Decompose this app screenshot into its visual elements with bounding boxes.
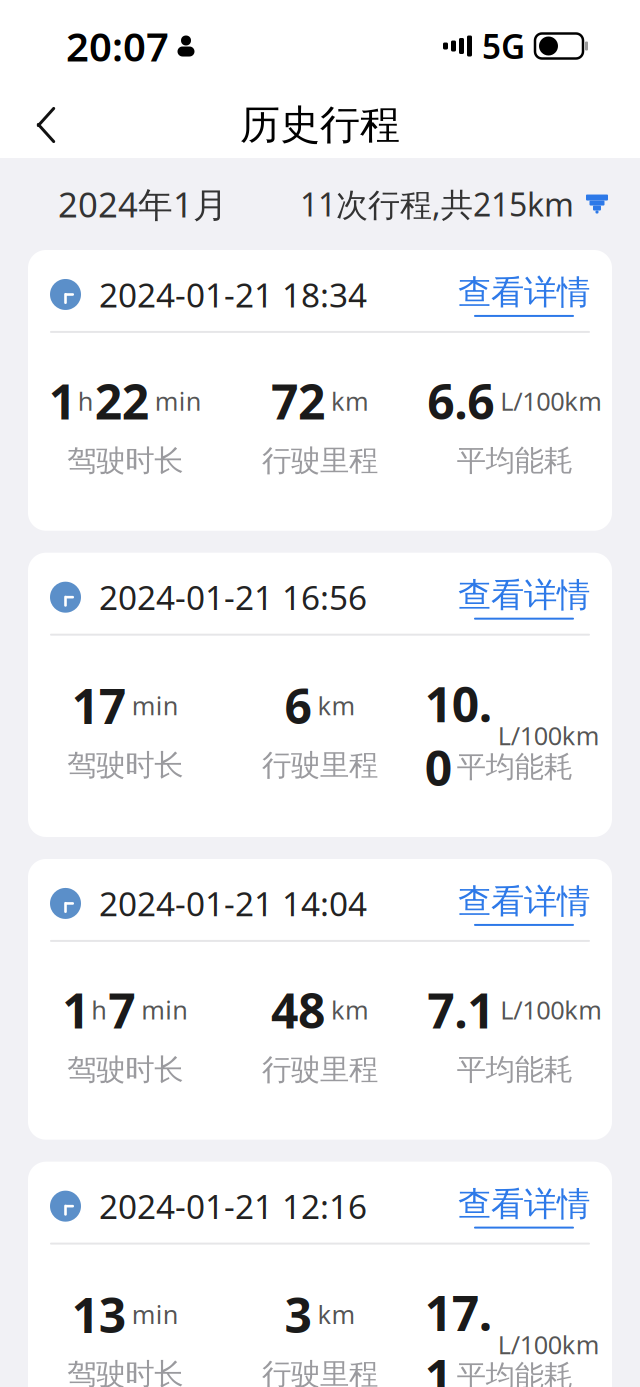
staticText: 6.6 (427, 369, 494, 433)
staticText: 行驶里程 (262, 1052, 378, 1088)
button[interactable]: 查看详情 (458, 1184, 590, 1229)
staticText: 10.0 (425, 672, 492, 799)
staticText: 5G (482, 24, 525, 68)
button[interactable]: 查看详情 (458, 881, 590, 926)
staticText: 平均能耗 (457, 1358, 573, 1387)
staticText: 11次行程,共215km (300, 183, 574, 225)
staticText: 48 (271, 978, 325, 1042)
staticText: 平均能耗 (457, 443, 573, 479)
staticText: 17.1 (425, 1281, 492, 1387)
staticText: 查看详情 (458, 272, 590, 313)
staticText: 6 (284, 673, 311, 737)
staticText: 行驶里程 (262, 747, 378, 783)
staticText: L/100km (498, 1327, 600, 1361)
staticText: 13 (72, 1282, 126, 1346)
staticText: 平均能耗 (457, 749, 573, 785)
staticText: L/100km (500, 384, 602, 418)
staticText: L/100km (498, 719, 600, 752)
staticText: 行驶里程 (262, 443, 378, 479)
staticText: min (141, 993, 188, 1027)
staticText: km (331, 384, 369, 418)
staticText: 驾驶时长 (67, 747, 183, 783)
staticText: km (317, 1297, 355, 1331)
staticText: 2024-01-21 18:34 (99, 272, 367, 317)
staticText: 行驶里程 (262, 1356, 378, 1387)
staticText: 平均能耗 (457, 1052, 573, 1088)
staticText: 7 (108, 978, 135, 1042)
staticText: 1 (62, 978, 89, 1042)
staticText: 22 (95, 369, 149, 433)
staticText: 20:07 (66, 19, 169, 72)
staticText: h (78, 384, 94, 418)
staticText: km (331, 993, 369, 1027)
staticText: 查看详情 (458, 575, 590, 616)
staticText: 查看详情 (458, 881, 590, 922)
button[interactable]: 返回 (14, 93, 78, 157)
staticText: 7.1 (427, 978, 494, 1042)
staticText: 2024-01-21 14:04 (99, 881, 367, 926)
staticText: min (132, 1297, 179, 1331)
staticText: 2024-01-21 12:16 (99, 1184, 367, 1228)
staticText: 17 (72, 673, 126, 737)
staticText: 驾驶时长 (67, 1052, 183, 1088)
staticText: 2024-01-21 16:56 (99, 575, 367, 619)
button[interactable]: 查看详情 (458, 272, 590, 317)
button[interactable]: 查看详情 (458, 575, 590, 620)
staticText: 查看详情 (458, 1184, 590, 1225)
button[interactable]: 11次行程,共215km (300, 183, 608, 225)
staticText: min (155, 384, 202, 418)
staticText: 历史行程 (240, 100, 400, 149)
staticText: 3 (284, 1282, 311, 1346)
staticText: km (317, 688, 355, 722)
staticText: h (91, 993, 107, 1027)
staticText: 1 (49, 369, 76, 433)
staticText: min (132, 688, 179, 722)
staticText: 72 (271, 369, 325, 433)
staticText: 2024年1月 (58, 181, 228, 227)
staticText: L/100km (500, 993, 602, 1027)
staticText: 驾驶时长 (67, 443, 183, 479)
staticText: 驾驶时长 (67, 1356, 183, 1387)
